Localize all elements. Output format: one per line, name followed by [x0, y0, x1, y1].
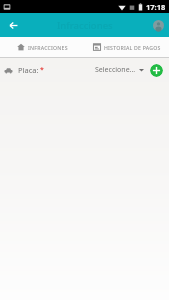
button[interactable]: HISTORIAL DE PAGOS [84, 37, 169, 57]
button[interactable]: Seleccione... [93, 63, 146, 77]
staticText: HISTORIAL DE PAGOS [104, 44, 161, 51]
staticText: INFRACCIONES [28, 44, 68, 51]
button[interactable]: Account [147, 13, 169, 37]
staticText: * [40, 65, 44, 75]
staticText: 17:18 [146, 2, 166, 12]
staticText: Seleccione... [95, 65, 136, 75]
button[interactable]: Back [0, 13, 26, 37]
staticText: Placa: [18, 65, 39, 75]
button[interactable]: INFRACCIONES [0, 37, 84, 57]
button[interactable]: Add [150, 64, 163, 77]
